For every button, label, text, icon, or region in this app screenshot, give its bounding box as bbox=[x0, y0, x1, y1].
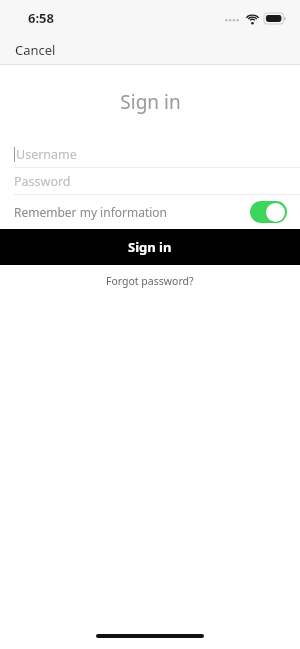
staticText: Username bbox=[16, 146, 77, 163]
button[interactable]: Cancel bbox=[0, 37, 68, 63]
button[interactable]: Remember my information bbox=[0, 195, 300, 229]
button[interactable]: Username bbox=[0, 141, 300, 167]
staticText: Cancel bbox=[15, 41, 56, 59]
button[interactable]: Sign in bbox=[0, 229, 300, 265]
staticText: Forgot password? bbox=[106, 274, 194, 288]
button[interactable]: Password bbox=[0, 168, 300, 194]
staticText: Sign in bbox=[128, 238, 172, 256]
staticText: 6:58 bbox=[28, 9, 54, 27]
button[interactable]: Remember my information toggle, on bbox=[250, 201, 287, 223]
button[interactable]: Forgot password? bbox=[96, 271, 204, 291]
staticText: Password bbox=[14, 173, 71, 190]
staticText: Sign in bbox=[120, 89, 181, 115]
staticText: Remember my information bbox=[14, 204, 250, 220]
